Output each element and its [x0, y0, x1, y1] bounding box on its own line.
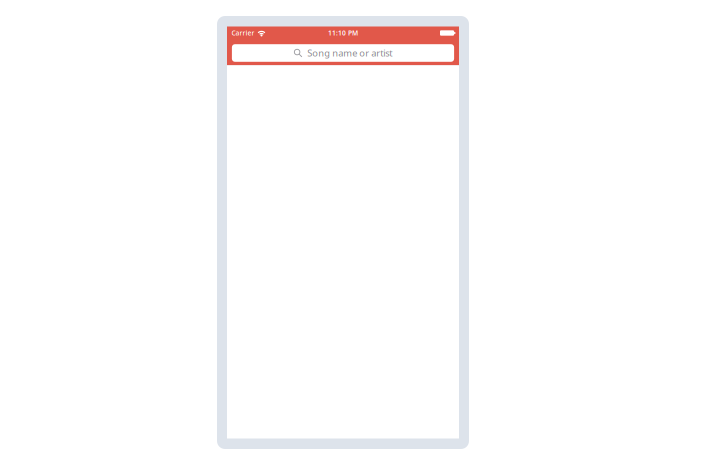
staticText: 11:10 PM — [328, 29, 358, 37]
button[interactable]: Search: Song name or artist — [232, 44, 454, 62]
staticText: Carrier — [231, 29, 254, 37]
staticText: Song name or artist — [307, 47, 392, 59]
